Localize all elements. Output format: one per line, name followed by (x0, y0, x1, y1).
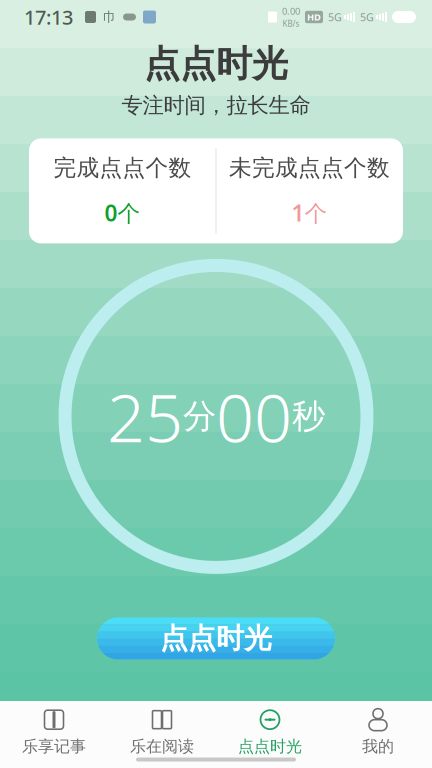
staticText: 分 (183, 396, 216, 437)
staticText: KB/s (282, 18, 299, 29)
button[interactable]: 我的 (324, 705, 432, 757)
staticText: 秒 (292, 396, 325, 437)
staticText: 我的 (362, 737, 394, 756)
staticText: 未完成点点个数 (229, 154, 390, 182)
staticText: 00 (216, 372, 292, 461)
staticText: 乐在阅读 (130, 737, 194, 756)
staticText: 0.00 (282, 5, 300, 17)
button[interactable]: 点点时光 (216, 705, 324, 757)
staticText: 5G (328, 10, 342, 24)
staticText: 乐享记事 (22, 737, 86, 756)
staticText: 点点时光 (160, 621, 272, 656)
staticText: 5G (360, 10, 374, 24)
staticText: 25 (107, 372, 183, 461)
staticText: 专注时间，拉长生命 (121, 92, 310, 118)
staticText: 巾 (103, 9, 116, 25)
staticText: HD (307, 11, 321, 23)
staticText: 完成点点个数 (53, 154, 191, 182)
staticText: 17:13 (24, 4, 73, 30)
button[interactable]: 点点时光 (97, 617, 335, 659)
button[interactable]: 乐在阅读 (108, 705, 216, 757)
button[interactable]: 乐享记事 (0, 705, 108, 757)
staticText: 1个 (291, 198, 327, 228)
staticText: 点点时光 (144, 42, 288, 86)
staticText: 点点时光 (238, 737, 302, 756)
staticText: 0个 (104, 198, 140, 228)
